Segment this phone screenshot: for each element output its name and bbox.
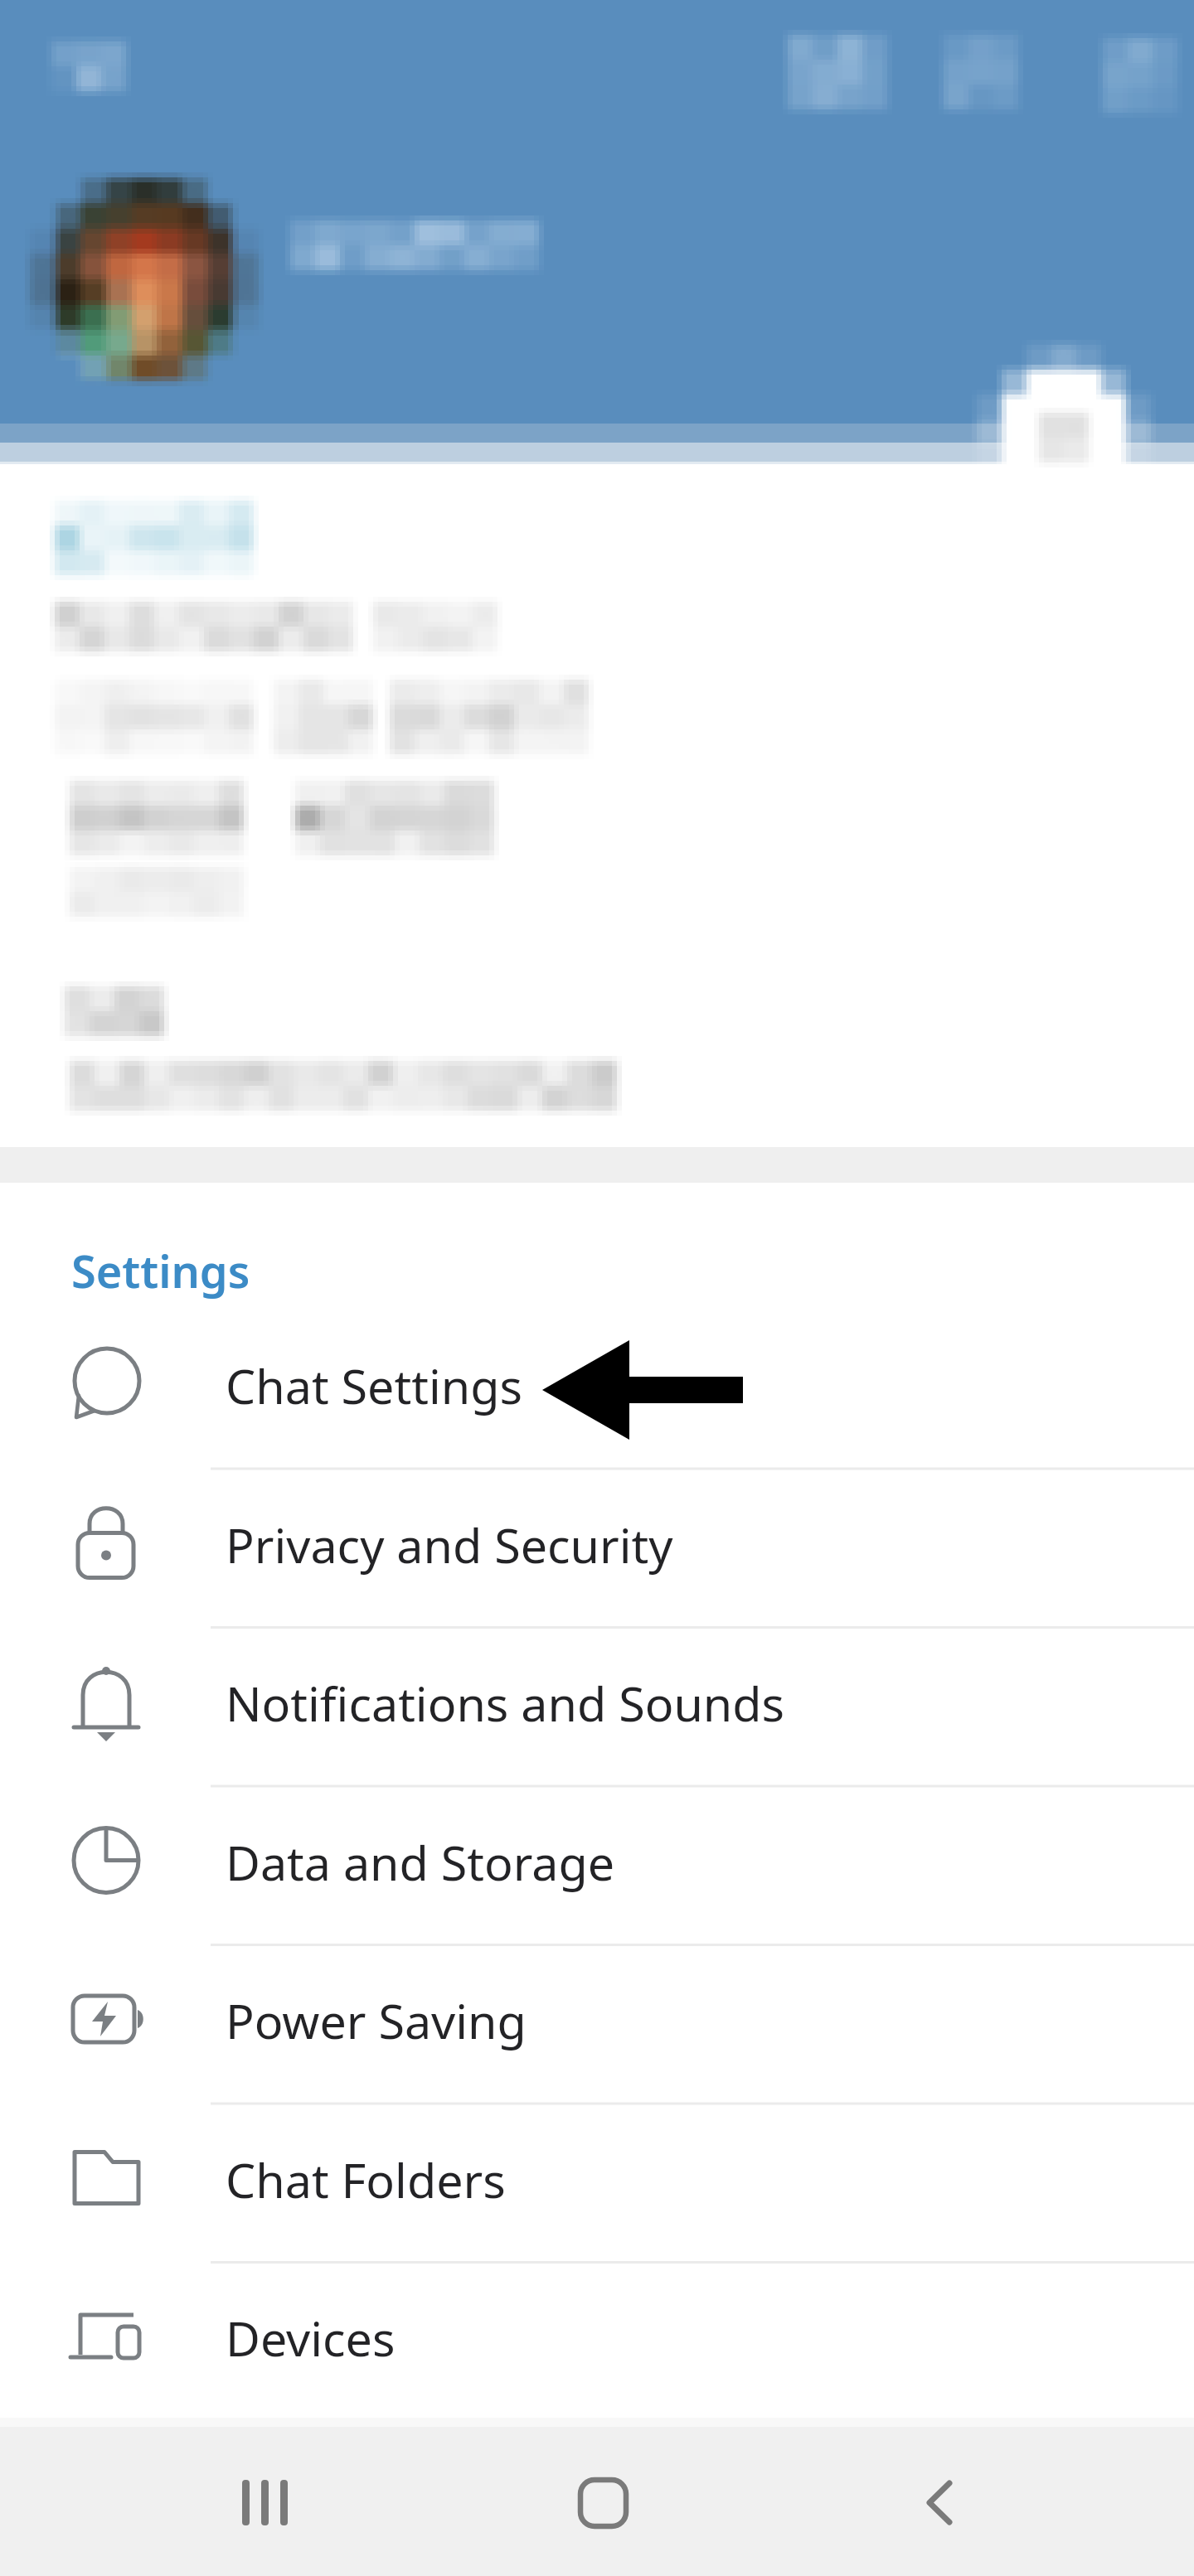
button[interactable]: Chat Settings	[0, 1309, 1194, 1468]
staticText: Power Saving	[226, 1988, 527, 2053]
staticText: Settings	[71, 1240, 250, 1301]
button[interactable]: Home	[536, 2427, 669, 2576]
staticText: Data and Storage	[226, 1830, 615, 1895]
staticText: Privacy and Security	[226, 1513, 673, 1577]
button[interactable]: Devices	[0, 2261, 1194, 2420]
button[interactable]: Data and Storage	[0, 1785, 1194, 1944]
staticText: Chat Settings	[226, 1353, 522, 1418]
button[interactable]: Privacy and Security	[0, 1468, 1194, 1627]
button[interactable]: Edit profile	[988, 355, 1140, 507]
staticText: Notifications and Sounds	[226, 1671, 785, 1736]
button[interactable]: Notifications and Sounds	[0, 1626, 1194, 1785]
staticText: Chat Folders	[226, 2147, 506, 2212]
button[interactable]: Recent apps	[199, 2427, 332, 2576]
button[interactable]: Power Saving	[0, 1944, 1194, 2103]
button[interactable]: Back	[873, 2427, 1006, 2576]
button[interactable]: Chat Folders	[0, 2103, 1194, 2262]
staticText: Devices	[226, 2306, 396, 2370]
